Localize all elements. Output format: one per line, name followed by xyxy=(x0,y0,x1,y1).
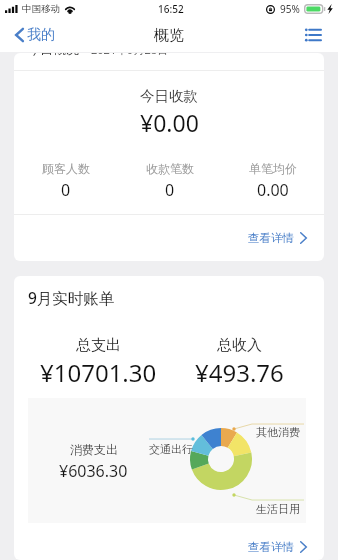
staticText: 2021年9月28日 xyxy=(91,53,169,57)
staticText: ¥6036.30 xyxy=(59,460,128,482)
staticText: ¥493.76 xyxy=(195,356,284,389)
staticText: 总支出 xyxy=(76,336,121,355)
staticText: ¥10701.30 xyxy=(40,356,157,389)
button[interactable]: 查看详情 xyxy=(234,535,324,559)
staticText: 9月实时账单 xyxy=(28,287,115,308)
staticText: 生活日用 xyxy=(256,502,300,516)
staticText: 其他消费 xyxy=(256,425,300,439)
staticText: 消费支出 xyxy=(70,442,118,457)
staticText: 0 xyxy=(61,179,71,201)
staticText: 今日收款 xyxy=(140,87,198,105)
staticText: 总收入 xyxy=(217,336,262,355)
staticText: 中国移动 xyxy=(22,3,60,15)
staticText: 查看详情 xyxy=(248,540,294,554)
staticText: 交通出行 xyxy=(149,442,193,456)
staticText: 顾客人数 xyxy=(42,161,90,176)
staticText: 今日概况 xyxy=(27,53,79,57)
staticText: 我的 xyxy=(27,26,55,44)
staticText: 0.00 xyxy=(257,179,289,201)
button[interactable]: 查看详情 xyxy=(234,226,324,250)
staticText: 0 xyxy=(165,179,175,201)
button[interactable]: 我的 xyxy=(0,20,63,50)
staticText: 收款笔数 xyxy=(146,161,194,176)
staticText: 95% xyxy=(280,2,300,16)
staticText: ¥0.00 xyxy=(140,107,199,138)
staticText: 16:52 xyxy=(158,2,184,16)
staticText: 单笔均价 xyxy=(249,161,297,176)
staticText: 概览 xyxy=(154,26,184,45)
staticText: 查看详情 xyxy=(248,231,294,245)
button[interactable]: Bill list xyxy=(302,24,324,46)
